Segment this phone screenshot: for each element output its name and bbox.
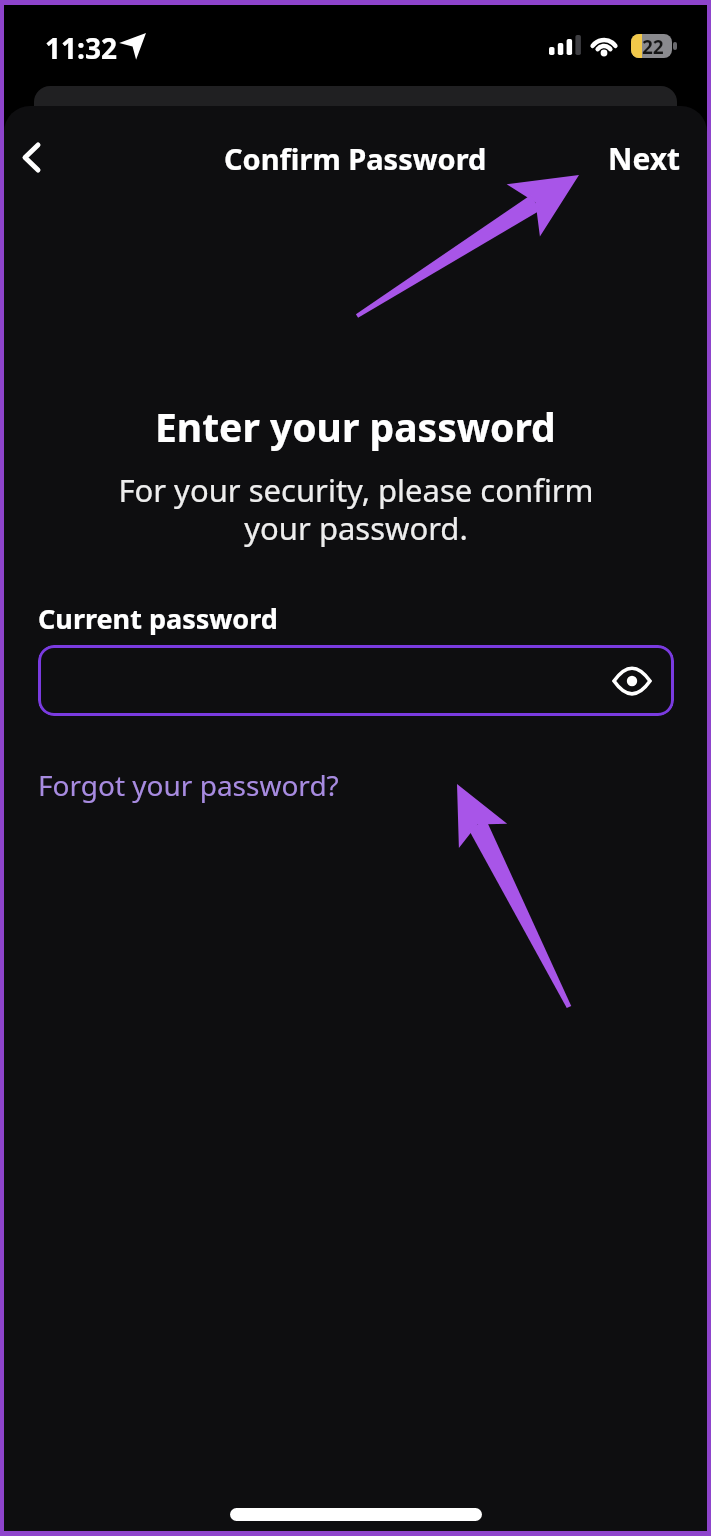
staticText: Current password bbox=[38, 600, 278, 637]
button[interactable] bbox=[610, 649, 674, 713]
staticText: Enter your password bbox=[155, 400, 556, 453]
staticText: Forgot your password? bbox=[38, 766, 339, 804]
staticText: 22 bbox=[642, 34, 664, 60]
staticText: For your security, please confirm your p… bbox=[118, 469, 594, 549]
button[interactable]: Next bbox=[598, 130, 691, 187]
staticText: 11:32 bbox=[45, 29, 117, 67]
staticText: Next bbox=[608, 138, 681, 179]
button[interactable] bbox=[12, 133, 58, 181]
button[interactable] bbox=[38, 645, 674, 716]
button[interactable]: Forgot your password? bbox=[30, 758, 347, 812]
staticText: Confirm Password bbox=[224, 139, 487, 178]
